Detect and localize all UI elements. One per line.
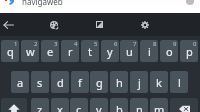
button[interactable]: x	[51, 98, 69, 112]
staticText: 9	[173, 40, 177, 48]
button[interactable]: k	[150, 71, 168, 93]
button[interactable]: z	[31, 98, 49, 112]
staticText: 5	[94, 40, 98, 48]
staticText: a	[17, 75, 24, 90]
button[interactable]: m	[150, 98, 168, 112]
button[interactable]: j	[130, 71, 148, 93]
staticText: 7	[133, 40, 137, 48]
button[interactable]: w	[21, 40, 39, 62]
button[interactable]: Account	[186, 0, 194, 5]
staticText: q	[7, 44, 14, 59]
staticText: p	[186, 44, 193, 59]
staticText: b	[116, 102, 123, 112]
staticText: x	[57, 102, 63, 112]
staticText: w	[26, 44, 35, 59]
button[interactable]: Save page	[91, 13, 107, 36]
staticText: n	[136, 102, 143, 112]
staticText: m	[154, 102, 165, 112]
staticText: 2	[34, 40, 38, 48]
staticText: z	[37, 102, 43, 112]
button[interactable]: h	[110, 71, 128, 93]
staticText: u	[126, 44, 133, 59]
button[interactable]	[170, 98, 198, 112]
staticText: v	[96, 102, 102, 112]
button[interactable]: r	[61, 40, 79, 62]
staticText: navigaweb	[22, 0, 63, 7]
button[interactable]: v	[90, 98, 108, 112]
button[interactable]: Theme	[46, 13, 62, 36]
button[interactable]: l	[170, 71, 188, 93]
staticText: 3	[54, 40, 58, 48]
button[interactable]: y	[101, 40, 119, 62]
staticText: o	[166, 44, 173, 59]
staticText: j	[138, 75, 141, 90]
button[interactable]: b	[110, 98, 128, 112]
staticText: e	[47, 44, 54, 59]
button[interactable]	[1, 98, 27, 112]
staticText: 6	[114, 40, 118, 48]
staticText: 0	[193, 40, 197, 48]
staticText: k	[156, 75, 162, 90]
button[interactable]: Settings	[137, 13, 153, 36]
button[interactable]: n	[130, 98, 148, 112]
staticText: l	[178, 75, 181, 90]
staticText: 4	[74, 40, 78, 48]
staticText: f	[78, 75, 82, 90]
button[interactable]: g	[90, 71, 108, 93]
staticText: y	[107, 44, 113, 59]
staticText: g	[96, 75, 103, 90]
button[interactable]: f	[71, 71, 89, 93]
button[interactable]: u	[120, 40, 138, 62]
button[interactable]: c	[70, 98, 88, 112]
button[interactable]: Back	[0, 13, 16, 36]
staticText: i	[148, 44, 151, 59]
button[interactable]: i	[140, 40, 158, 62]
staticText: h	[116, 75, 123, 90]
button[interactable]: q	[1, 40, 19, 62]
staticText: s	[37, 75, 43, 90]
staticText: t	[88, 44, 92, 59]
button[interactable]: a	[11, 71, 29, 93]
staticText: c	[76, 102, 82, 112]
staticText: d	[57, 75, 64, 90]
staticText: 1	[14, 40, 18, 48]
staticText: 8	[153, 40, 157, 48]
button[interactable]: o	[160, 40, 178, 62]
staticText: r	[68, 44, 73, 59]
button[interactable]: t	[81, 40, 99, 62]
button[interactable]: s	[31, 71, 49, 93]
button[interactable]: e	[41, 40, 59, 62]
button[interactable]: d	[51, 71, 69, 93]
button[interactable]: p	[180, 40, 198, 62]
